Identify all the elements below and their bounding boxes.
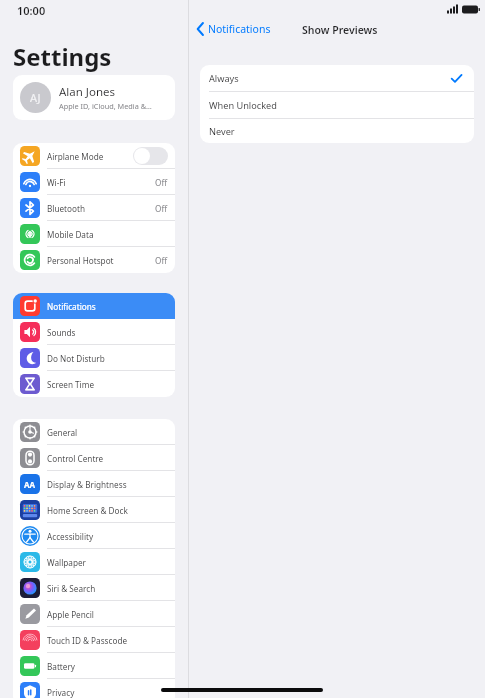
staticText: Apple ID, iCloud, Media &… <box>59 101 152 111</box>
staticText: Battery <box>47 661 168 672</box>
button[interactable]: Wallpaper <box>13 549 175 575</box>
staticText: Accessibility <box>47 531 168 542</box>
staticText: When Unlocked <box>209 99 277 112</box>
staticText: Settings <box>13 40 112 73</box>
button[interactable]: Accessibility <box>13 523 175 549</box>
button[interactable]: When Unlocked <box>200 92 474 118</box>
staticText: Show Previews <box>302 23 378 37</box>
staticText: Control Centre <box>47 453 168 464</box>
staticText: Personal Hotspot <box>47 255 155 266</box>
staticText: Mobile Data <box>47 229 168 240</box>
button[interactable]: Apple Pencil <box>13 601 175 627</box>
staticText: Off <box>155 203 168 214</box>
button[interactable]: Wi-Fi <box>13 169 175 195</box>
button[interactable]: Personal Hotspot <box>13 247 175 273</box>
button[interactable]: Home Screen & Dock <box>13 497 175 523</box>
staticText: Do Not Disturb <box>47 353 168 364</box>
button[interactable]: Touch ID & Passcode <box>13 627 175 653</box>
staticText: Off <box>155 177 168 188</box>
button[interactable]: Privacy <box>13 679 175 698</box>
staticText: Display & Brightness <box>47 479 168 490</box>
button[interactable]: AA <box>13 471 175 497</box>
button[interactable]: Do Not Disturb <box>13 345 175 371</box>
staticText: Off <box>155 255 168 266</box>
staticText: Never <box>209 125 235 138</box>
button[interactable]: Airplane Mode toggle <box>133 147 168 165</box>
staticText: Notifications <box>47 301 168 312</box>
staticText: Screen Time <box>47 379 168 390</box>
staticText: Airplane Mode <box>47 151 133 162</box>
staticText: Apple Pencil <box>47 609 168 620</box>
staticText: Touch ID & Passcode <box>47 635 168 646</box>
staticText: Home Screen & Dock <box>47 505 168 516</box>
button[interactable]: Notifications <box>13 293 175 319</box>
button[interactable]: Mobile Data <box>13 221 175 247</box>
staticText: Always <box>209 72 239 85</box>
staticText: Privacy <box>47 687 168 698</box>
button[interactable]: General <box>13 419 175 445</box>
staticText: Siri & Search <box>47 583 168 594</box>
staticText: AA <box>24 479 36 490</box>
button[interactable]: AJ <box>13 75 175 120</box>
button[interactable]: Never <box>200 119 474 143</box>
staticText: Sounds <box>47 327 168 338</box>
staticText: Bluetooth <box>47 203 155 214</box>
button[interactable]: Always <box>200 65 474 91</box>
staticText: 10:00 <box>17 3 46 18</box>
staticText: Notifications <box>208 22 271 36</box>
button[interactable]: Notifications <box>192 19 276 39</box>
button[interactable]: Airplane Mode <box>13 143 175 169</box>
button[interactable]: Sounds <box>13 319 175 345</box>
button[interactable]: Control Centre <box>13 445 175 471</box>
staticText: Wi-Fi <box>47 177 155 188</box>
button[interactable]: Bluetooth <box>13 195 175 221</box>
staticText: Alan Jones <box>59 84 116 100</box>
button[interactable]: Battery <box>13 653 175 679</box>
staticText: General <box>47 427 168 438</box>
button[interactable]: Screen Time <box>13 371 175 397</box>
button[interactable]: Siri & Search <box>13 575 175 601</box>
staticText: Wallpaper <box>47 557 168 568</box>
staticText: AJ <box>30 90 41 105</box>
